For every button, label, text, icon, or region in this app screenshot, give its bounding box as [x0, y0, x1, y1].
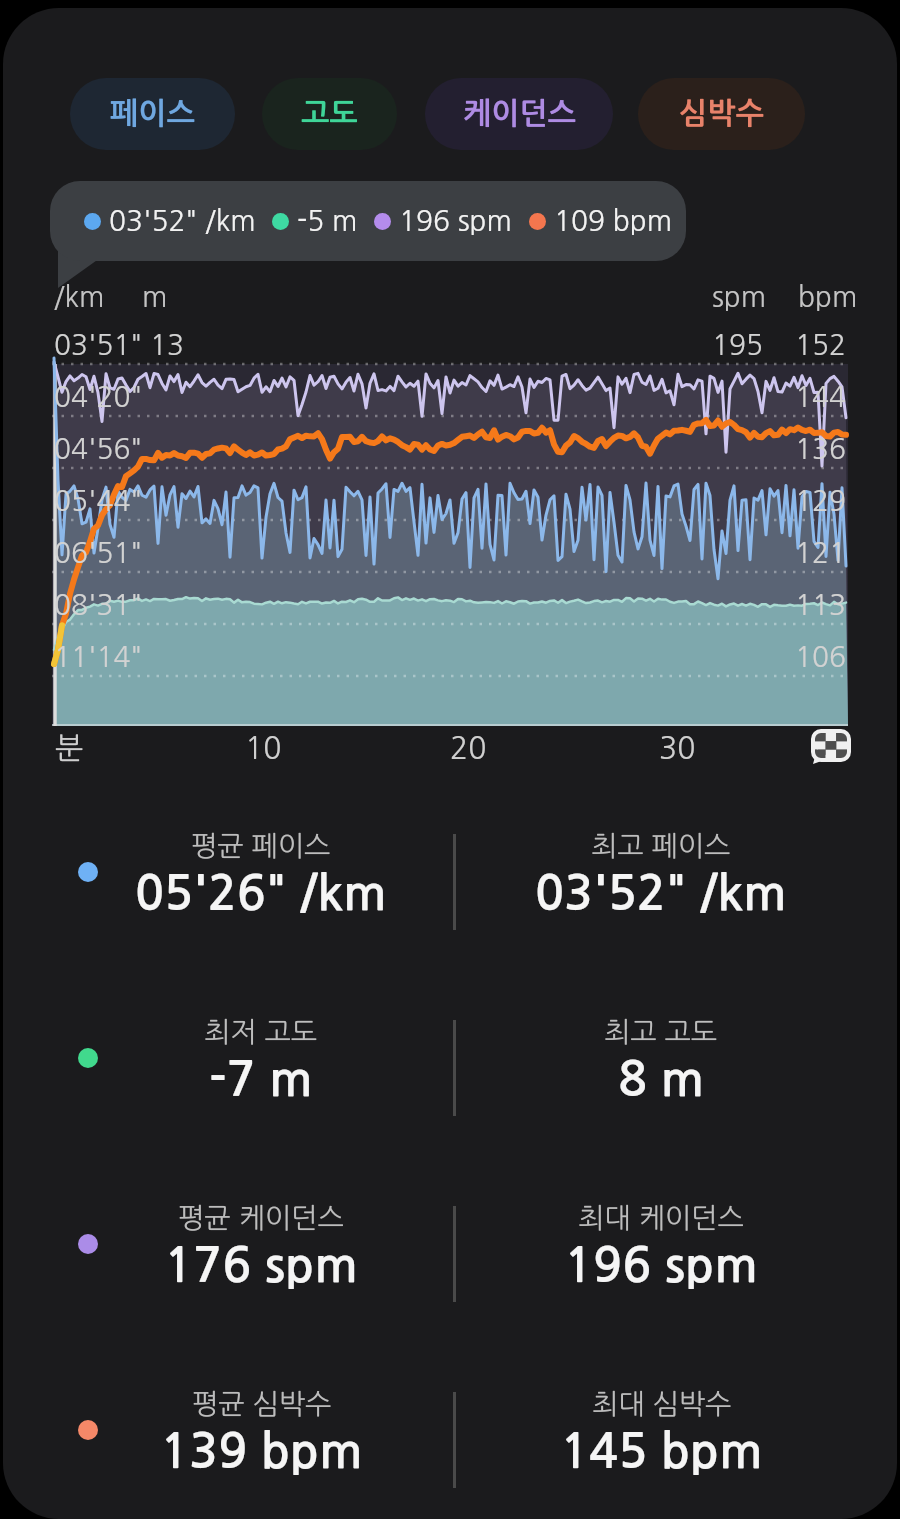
staticText: 최저 고도 — [204, 1018, 318, 1046]
staticText: 최고 고도 — [604, 1018, 718, 1046]
staticText: 121 — [786, 539, 846, 567]
staticText: 05'44" — [54, 487, 143, 515]
staticText: 20 — [450, 733, 487, 763]
button[interactable]: 케이던스 — [425, 78, 613, 150]
staticText: -5 m — [297, 207, 358, 235]
button[interactable]: 고도 — [262, 78, 397, 150]
staticText: 8 m — [618, 1056, 705, 1104]
staticText: 139 bpm — [160, 1428, 363, 1476]
staticText: 11'14" — [54, 643, 143, 671]
staticText: 03'52" /km — [109, 207, 256, 235]
staticText: 04'56" — [54, 435, 143, 463]
staticText: 최대 케이던스 — [578, 1204, 744, 1232]
staticText: bpm — [798, 283, 858, 311]
staticText: 136 — [786, 435, 846, 463]
staticText: 10 — [245, 733, 282, 763]
staticText: 196 spm — [564, 1242, 758, 1290]
button[interactable]: 평균 심박수 — [71, 1390, 451, 1476]
staticText: 113 — [786, 591, 846, 619]
staticText: 03'51" — [54, 331, 143, 359]
staticText: /km — [54, 283, 105, 311]
staticText: 최고 페이스 — [591, 832, 731, 860]
staticText: 분 — [55, 733, 84, 763]
staticText: 04'20" — [54, 383, 143, 411]
staticText: 145 bpm — [560, 1428, 763, 1476]
button[interactable]: 평균 페이스 — [71, 832, 451, 918]
staticText: 129 — [786, 487, 846, 515]
button[interactable]: 심박수 — [638, 78, 805, 150]
staticText: 페이스 — [110, 99, 195, 129]
staticText: 케이던스 — [463, 99, 576, 129]
button[interactable]: 페이스 — [70, 78, 235, 150]
staticText: 152 — [786, 331, 846, 359]
button[interactable]: 평균 케이던스 — [71, 1204, 451, 1290]
button[interactable]: 최저 고도 — [71, 1018, 451, 1104]
staticText: 05'26" /km — [135, 870, 387, 918]
staticText: 심박수 — [679, 99, 764, 129]
staticText: spm — [712, 283, 767, 311]
staticText: 30 — [659, 733, 696, 763]
staticText: 06'51" — [54, 539, 143, 567]
staticText: 144 — [786, 383, 846, 411]
staticText: 03'52" /km — [535, 870, 787, 918]
staticText: 195 — [712, 331, 763, 359]
staticText: 평균 심박수 — [192, 1390, 332, 1418]
staticText: m — [142, 283, 168, 311]
staticText: 평균 페이스 — [191, 832, 331, 860]
staticText: 고도 — [301, 99, 358, 129]
button[interactable]: 03'52" /km — [50, 181, 686, 261]
button[interactable]: 최고 페이스 — [471, 832, 851, 918]
staticText: 08'31" — [54, 591, 143, 619]
button[interactable]: 최대 케이던스 — [471, 1204, 851, 1290]
button[interactable]: 최대 심박수 — [471, 1390, 851, 1476]
staticText: 13 — [150, 331, 184, 359]
staticText: 176 spm — [164, 1242, 358, 1290]
staticText: 평균 케이던스 — [178, 1204, 344, 1232]
staticText: 196 spm — [399, 207, 513, 235]
button[interactable]: 최고 고도 — [471, 1018, 851, 1104]
staticText: 109 bpm — [554, 207, 673, 235]
staticText: 106 — [786, 643, 846, 671]
staticText: -7 m — [209, 1056, 313, 1104]
staticText: 최대 심박수 — [592, 1390, 732, 1418]
